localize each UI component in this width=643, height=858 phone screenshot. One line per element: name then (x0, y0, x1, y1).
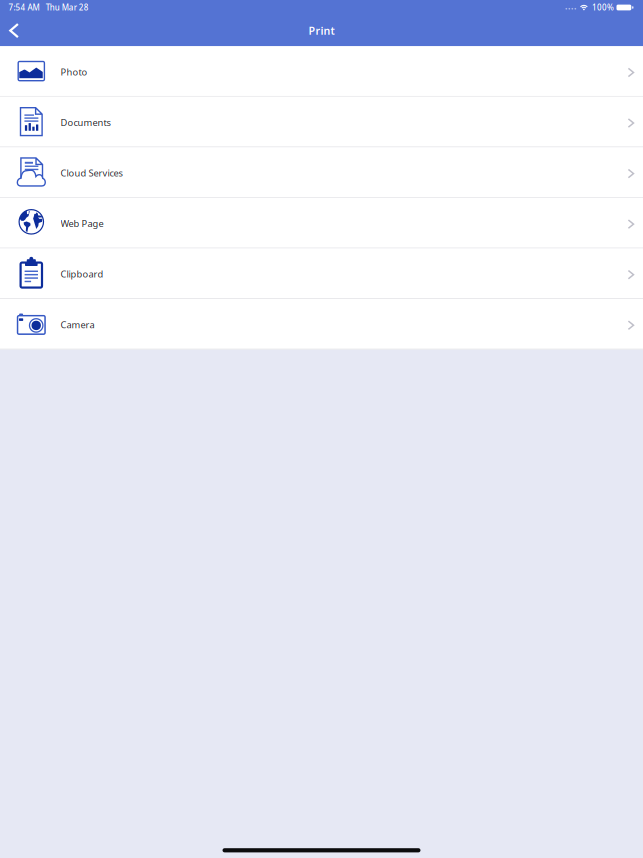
button[interactable]: Clipboard (0, 248, 643, 299)
staticText: Camera (61, 318, 95, 331)
button[interactable]: Photo (0, 46, 643, 97)
button[interactable]: Cloud Services (0, 147, 643, 198)
staticText: 7:54 AM (9, 2, 40, 13)
staticText: Thu Mar 28 (46, 2, 89, 13)
staticText: 100% (592, 2, 614, 13)
staticText: Documents (61, 116, 111, 128)
staticText: Cloud Services (61, 167, 123, 179)
staticText: Print (308, 23, 334, 38)
button[interactable]: Back (0, 17, 30, 44)
button[interactable]: Web Page (0, 198, 643, 248)
staticText: Photo (61, 66, 88, 78)
button[interactable]: Documents (0, 97, 643, 147)
staticText: Web Page (61, 217, 104, 230)
button[interactable]: Camera (0, 299, 643, 349)
staticText: Clipboard (61, 268, 104, 280)
